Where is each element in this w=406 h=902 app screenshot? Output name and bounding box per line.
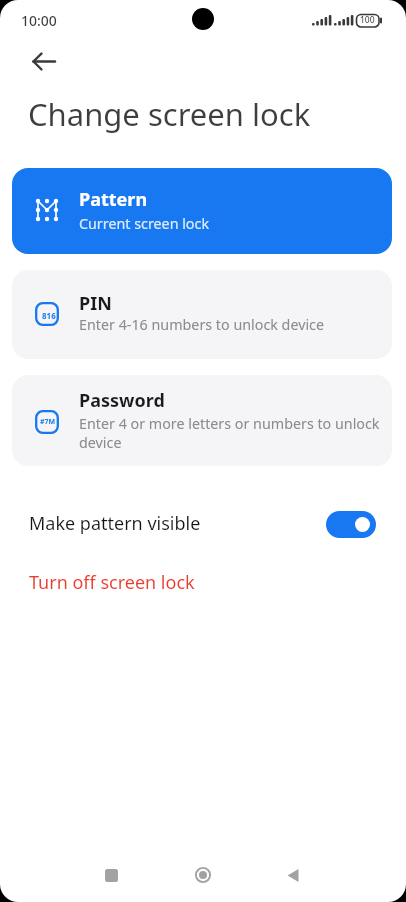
button[interactable] [153,850,253,900]
staticText: #7M [40,417,56,427]
staticText: Current screen lock [79,214,210,233]
staticText: Pattern [79,187,148,212]
button[interactable]: #7M [12,375,392,466]
staticText: Turn off screen lock [29,570,195,595]
button[interactable] [245,850,345,900]
staticText: Enter 4 or more letters or numbers to un… [79,414,380,452]
staticText: PIN [79,291,112,316]
button[interactable] [61,850,161,900]
button[interactable]: Turn off screen lock [12,562,252,602]
staticText: 816 [42,310,56,321]
staticText: Enter 4-16 numbers to unlock device [79,315,325,334]
staticText: 100 [360,14,375,26]
button[interactable]: 816 [12,270,392,359]
staticText: Change screen lock [28,93,311,135]
staticText: Password [79,388,165,413]
staticText: Make pattern visible [29,511,201,536]
button[interactable]: Make pattern visible [12,502,394,548]
button[interactable] [20,40,66,86]
staticText: 10:00 [21,11,57,30]
button[interactable]: Pattern [12,168,392,254]
